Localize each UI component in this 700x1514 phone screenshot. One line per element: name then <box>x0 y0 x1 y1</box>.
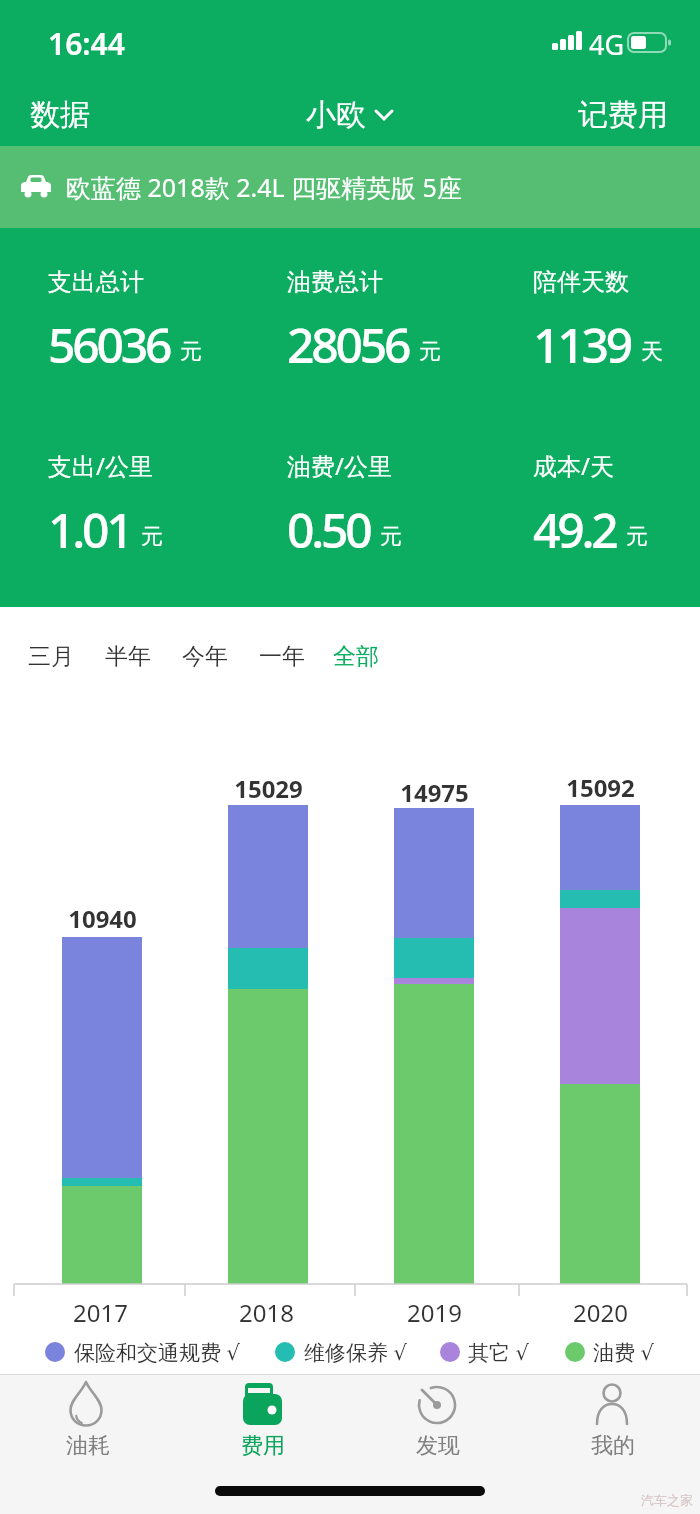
staticText: 我的 <box>591 1432 635 1460</box>
button[interactable] <box>202 1376 322 1468</box>
staticText: 成本/天 <box>533 449 614 482</box>
staticText: 4G <box>589 26 625 63</box>
button[interactable]: 三月 <box>22 636 80 677</box>
staticText: 油费 √ <box>593 1338 654 1367</box>
staticText: 元 <box>141 523 163 551</box>
button[interactable]: 记费用 <box>572 90 674 140</box>
staticText: 其它 √ <box>468 1338 529 1367</box>
staticText: 1.01 <box>48 497 131 562</box>
staticText: 一年 <box>259 642 305 671</box>
staticText: 1139 <box>533 312 631 377</box>
staticText: 10940 <box>68 902 137 935</box>
staticText: 支出总计 <box>48 267 144 297</box>
button[interactable]: 一年 <box>253 636 311 677</box>
staticText: 费用 <box>241 1432 285 1460</box>
staticText: 陪伴天数 <box>533 267 629 297</box>
staticText: 油耗 <box>66 1432 110 1460</box>
staticText: 半年 <box>105 642 151 671</box>
staticText: 发现 <box>416 1432 460 1460</box>
staticText: 56036 <box>48 312 170 377</box>
staticText: 14975 <box>400 776 469 809</box>
button[interactable] <box>27 1376 147 1468</box>
staticText: 15092 <box>566 771 635 804</box>
staticText: 元 <box>180 338 202 366</box>
staticText: 油费/公里 <box>287 449 392 482</box>
button[interactable] <box>377 1376 497 1468</box>
staticText: 49.2 <box>533 497 616 562</box>
staticText: 今年 <box>182 642 228 671</box>
staticText: 全部 <box>333 642 379 671</box>
staticText: 元 <box>419 338 441 366</box>
button[interactable] <box>552 1376 672 1468</box>
staticText: 三月 <box>28 642 74 671</box>
staticText: 记费用 <box>578 96 668 134</box>
staticText: 元 <box>380 523 402 551</box>
staticText: 汽车之家 <box>641 1492 693 1508</box>
staticText: 2018 <box>239 1296 294 1329</box>
staticText: 数据 <box>30 96 90 134</box>
staticText: 小欧 <box>306 96 366 134</box>
button[interactable]: 小欧 <box>300 90 398 140</box>
staticText: 油费总计 <box>287 267 383 297</box>
staticText: 28056 <box>287 312 409 377</box>
staticText: 维修保养 √ <box>304 1338 407 1367</box>
staticText: 16:44 <box>48 23 125 64</box>
staticText: 欧蓝德 2018款 2.4L 四驱精英版 5座 <box>66 170 462 204</box>
button[interactable]: 半年 <box>99 636 157 677</box>
button[interactable]: 数据 <box>24 90 96 140</box>
staticText: 2017 <box>73 1296 128 1329</box>
staticText: 支出/公里 <box>48 449 153 482</box>
button[interactable]: 今年 <box>176 636 234 677</box>
button[interactable]: 欧蓝德 2018款 2.4L 四驱精英版 5座 <box>0 146 700 228</box>
staticText: 天 <box>641 338 663 366</box>
staticText: 2020 <box>573 1296 628 1329</box>
button[interactable]: 全部 <box>327 636 385 677</box>
staticText: 0.50 <box>287 497 370 562</box>
staticText: 2019 <box>407 1296 462 1329</box>
staticText: 保险和交通规费 √ <box>74 1338 240 1367</box>
staticText: 元 <box>626 523 648 551</box>
staticText: 15029 <box>234 772 303 805</box>
